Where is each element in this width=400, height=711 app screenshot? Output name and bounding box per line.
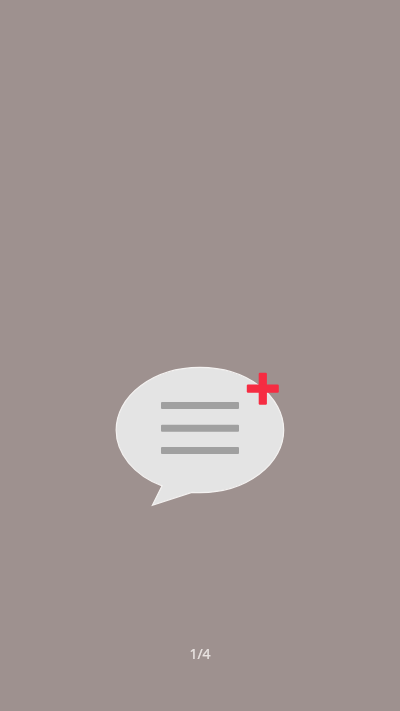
staticText: 1/4 (189, 644, 211, 663)
other: Onboarding page 1 of 4 (0, 0, 400, 711)
button[interactable]: New message (112, 364, 288, 510)
button[interactable]: 1/4 (170, 640, 230, 668)
